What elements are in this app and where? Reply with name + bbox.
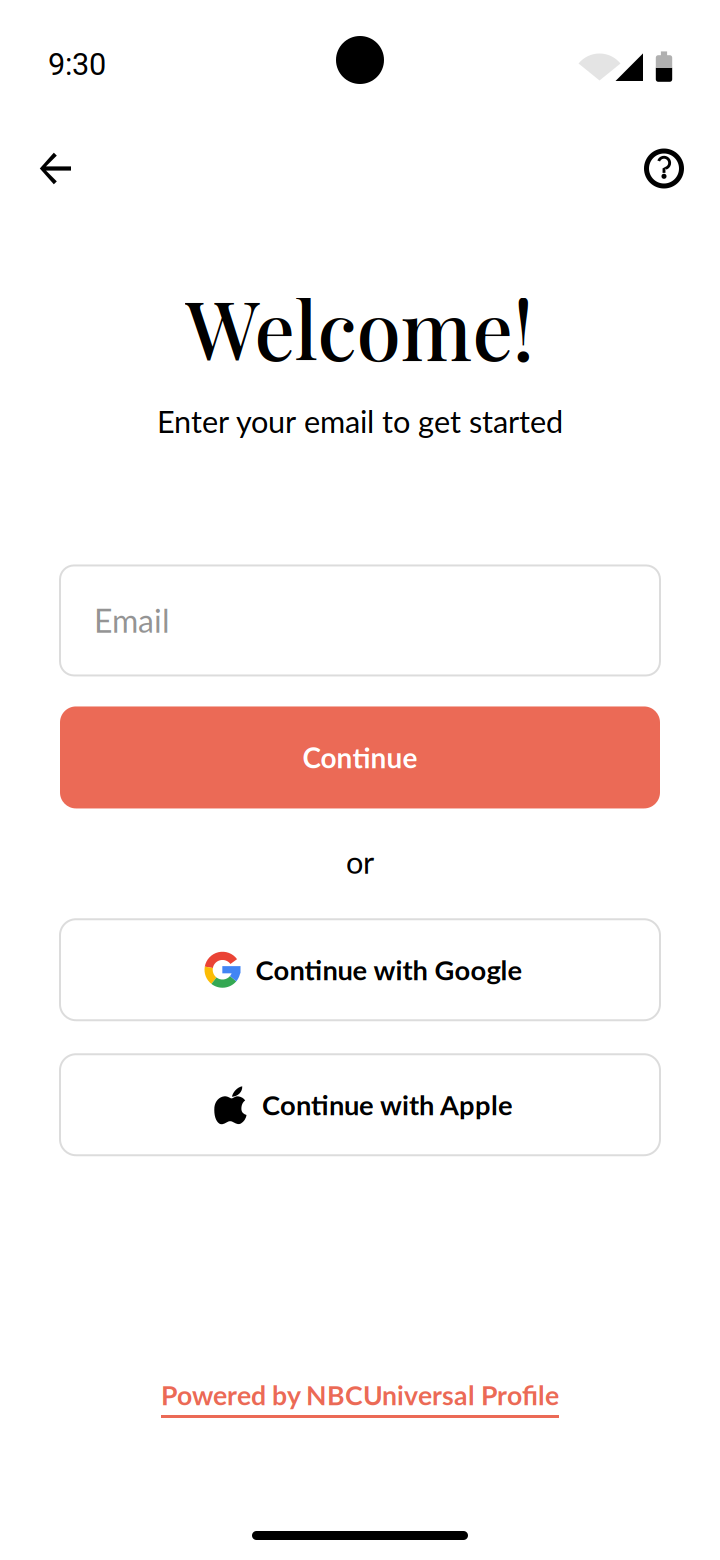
- button[interactable]: Continue: [60, 706, 660, 808]
- button[interactable]: Help: [632, 136, 696, 200]
- button[interactable]: Back: [24, 136, 88, 200]
- staticText: Email: [94, 601, 170, 640]
- staticText: or: [346, 843, 374, 880]
- button[interactable]: Powered by NBCUniversal Profile: [161, 1379, 559, 1418]
- staticText: Continue with Google: [255, 953, 522, 986]
- button[interactable]: Continue with Google: [60, 919, 660, 1020]
- staticText: Powered by NBCUniversal Profile: [161, 1379, 559, 1411]
- button[interactable]: Continue with Apple: [60, 1054, 660, 1155]
- staticText: Continue: [302, 741, 417, 774]
- staticText: Welcome!: [185, 274, 534, 381]
- staticText: Continue with Apple: [262, 1088, 513, 1121]
- staticText: Enter your email to get started: [157, 403, 563, 439]
- staticText: 9:30: [48, 46, 106, 82]
